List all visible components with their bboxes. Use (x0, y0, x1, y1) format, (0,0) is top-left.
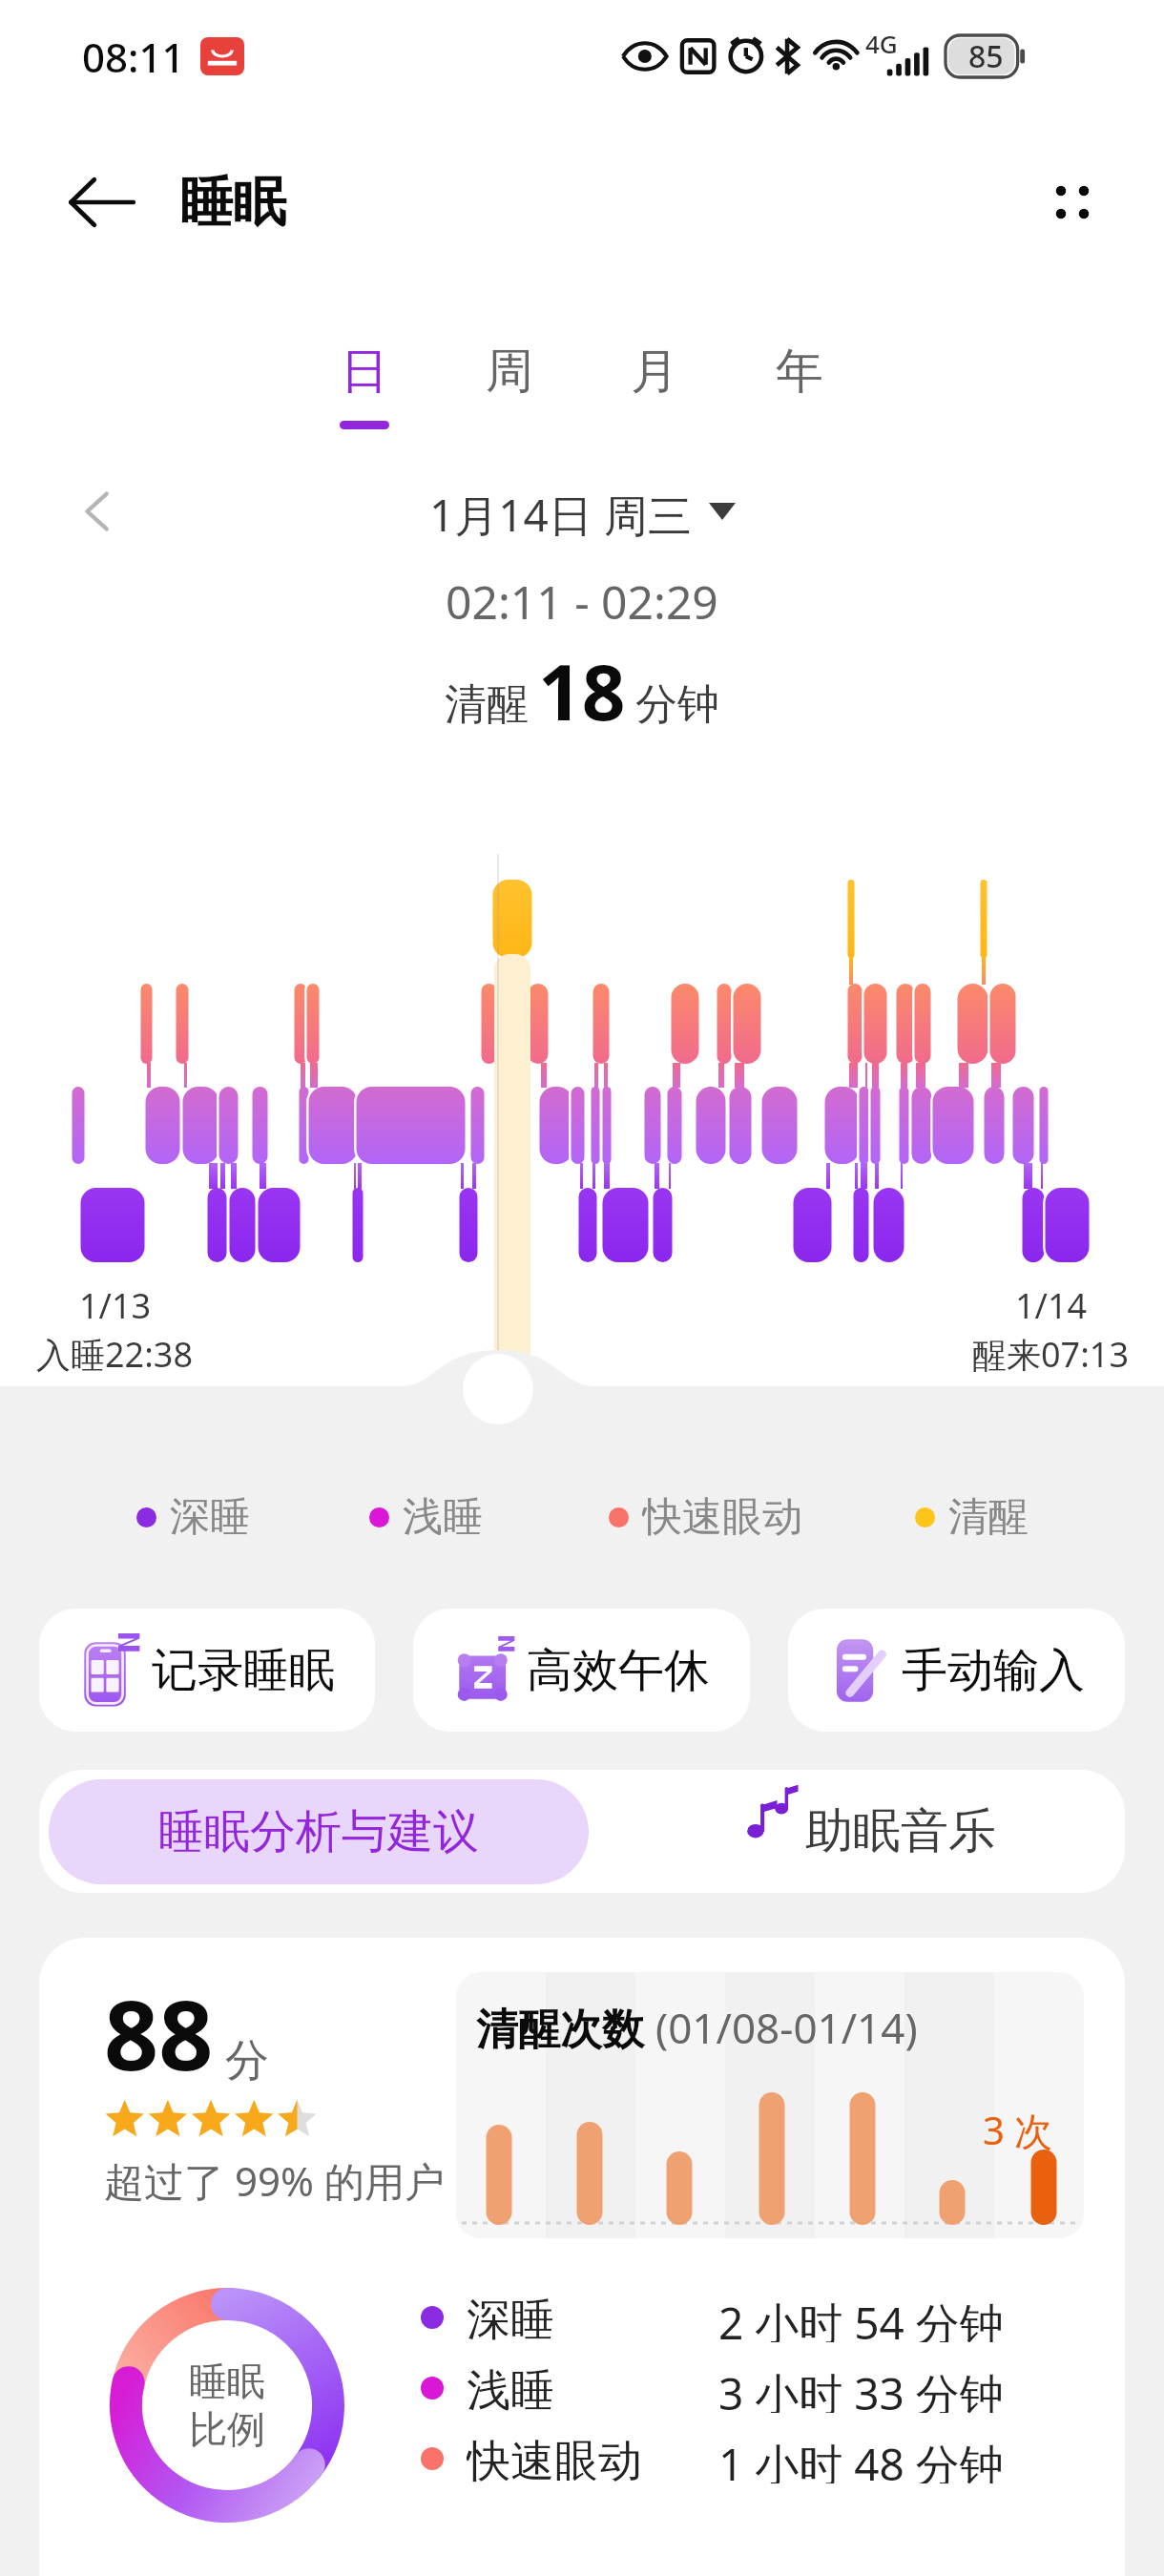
button[interactable]: 助眠音乐 (589, 1770, 1125, 1893)
staticText: 3 次 (983, 2104, 1053, 2156)
button[interactable]: 年 (727, 342, 872, 429)
staticText: 分 (225, 2033, 269, 2088)
staticText: 年 (776, 342, 823, 402)
staticText: 入睡22:38 (36, 1331, 194, 1378)
staticText: 88 (104, 1968, 214, 2098)
staticText: 助眠音乐 (805, 1801, 996, 1861)
staticText: 分钟 (635, 678, 719, 731)
staticText: 日 (341, 342, 388, 402)
button[interactable]: 月 (582, 342, 727, 429)
button[interactable]: 手动输入 (788, 1609, 1125, 1732)
staticText: 快速眼动 (467, 2434, 642, 2483)
staticText: 1 小时 48 分钟 (718, 2434, 1004, 2483)
staticText: 记录睡眠 (152, 1642, 335, 1699)
staticText: 85 (968, 35, 1004, 77)
staticText: 快速眼动 (642, 1492, 802, 1542)
staticText: 1/14 (1015, 1282, 1088, 1329)
staticText: 深睡 (170, 1492, 250, 1542)
button[interactable]: 高效午休 (413, 1609, 750, 1732)
staticText: 02:11 - 02:29 (446, 571, 718, 633)
button[interactable]: Previous day (59, 485, 135, 538)
staticText: 深睡 (467, 2293, 554, 2342)
staticText: 睡眠分析与建议 (158, 1803, 479, 1860)
staticText: 睡眠 (179, 169, 286, 237)
staticText: 周 (486, 342, 533, 402)
button[interactable]: 睡眠分析与建议 (49, 1779, 589, 1884)
staticText: 高效午休 (527, 1642, 710, 1699)
staticText: 1月14日 周三 (429, 485, 692, 538)
staticText: (01/08-01/14) (655, 1999, 918, 2056)
button[interactable]: 1月14日 周三 (429, 485, 736, 538)
staticText: 3 小时 33 分钟 (718, 2363, 1004, 2413)
staticText: 清醒次数 (476, 2004, 644, 2056)
staticText: 清醒 (445, 678, 529, 731)
button[interactable]: 记录睡眠 (39, 1609, 375, 1732)
staticText: 浅睡 (403, 1492, 483, 1542)
staticText: 醒来07:13 (972, 1331, 1130, 1378)
staticText: 超过了 99% 的用户 (104, 2153, 445, 2208)
staticText: 比例 (189, 2405, 265, 2453)
staticText: 1/13 (79, 1282, 152, 1329)
button[interactable]: 周 (437, 342, 582, 429)
staticText: 月 (631, 342, 678, 402)
staticText: 18 (538, 638, 626, 742)
button[interactable]: 日 (292, 342, 437, 429)
staticText: 清醒 (948, 1492, 1029, 1542)
staticText: 08:11 (82, 30, 185, 84)
button[interactable]: More options (1027, 156, 1118, 248)
staticText: 2 小时 54 分钟 (718, 2293, 1004, 2342)
staticText: 浅睡 (467, 2363, 554, 2413)
staticText: 手动输入 (902, 1642, 1085, 1699)
staticText: 睡眠 (189, 2358, 265, 2405)
staticText: 4G (865, 27, 898, 60)
button[interactable]: Back (55, 156, 147, 248)
